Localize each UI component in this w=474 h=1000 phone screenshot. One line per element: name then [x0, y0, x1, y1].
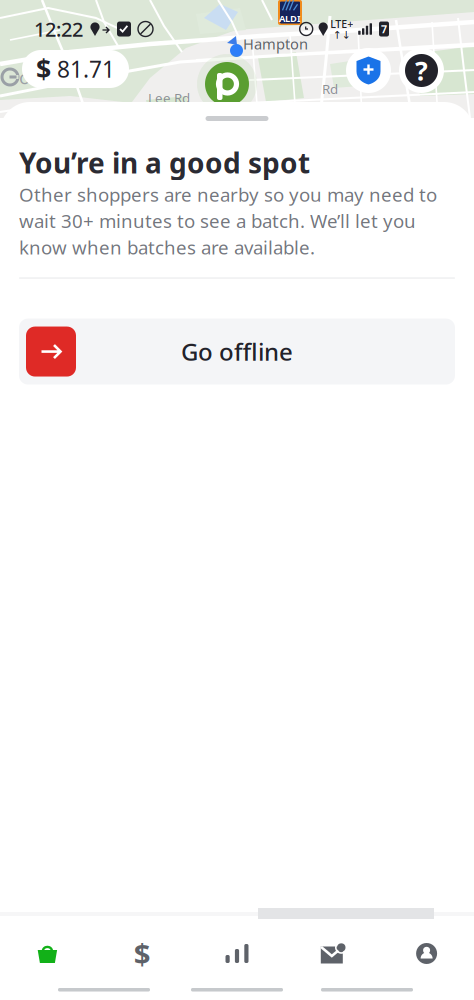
staticText: Other shoppers are nearby so you may nee… — [19, 182, 437, 260]
staticText: LTE+ — [330, 17, 353, 31]
staticText: Rd — [322, 80, 338, 98]
button[interactable]: Stats — [190, 925, 284, 982]
staticText: $ — [134, 934, 151, 973]
staticText: ALDI — [279, 12, 301, 25]
staticText: You’re in a good spot — [19, 144, 310, 181]
staticText: 12:22 — [34, 16, 83, 42]
staticText: Lee Rd — [148, 89, 190, 107]
button[interactable]: Earnings — [95, 925, 190, 982]
button[interactable]: Go offline — [19, 319, 455, 385]
staticText: $ — [36, 51, 51, 87]
staticText: ↑↓ — [333, 29, 351, 41]
button[interactable]: Help — [399, 48, 444, 93]
staticText: Hampton — [243, 34, 308, 53]
staticText: o — [19, 65, 30, 89]
staticText: ? — [415, 53, 428, 88]
button[interactable]: $ — [22, 50, 129, 88]
button[interactable]: Safety — [346, 48, 391, 93]
button[interactable]: Messages — [284, 925, 379, 982]
button[interactable]: Batches — [0, 925, 95, 982]
staticText: 7 — [381, 22, 387, 36]
staticText: Go offline — [181, 336, 293, 367]
staticText: 81.71 — [57, 54, 115, 84]
button[interactable]: Account — [379, 925, 474, 982]
